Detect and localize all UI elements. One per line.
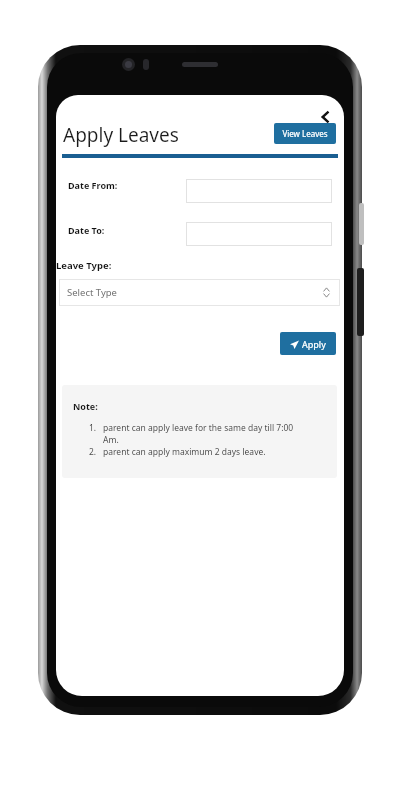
button[interactable]: Select Type: [59, 279, 340, 306]
staticText: Apply Leaves: [63, 122, 179, 148]
staticText: parent can apply maximum 2 days leave.: [103, 446, 266, 458]
staticText: Apply: [302, 338, 326, 350]
staticText: 2.: [89, 446, 97, 458]
staticText: 1.: [89, 422, 97, 434]
button[interactable]: Date To input: [186, 222, 332, 246]
button[interactable]: Date From input: [186, 179, 332, 203]
staticText: parent can apply leave for the same day …: [103, 422, 328, 446]
staticText: View Leaves: [282, 128, 328, 139]
staticText: Select Type: [67, 286, 117, 299]
staticText: Leave Type:: [56, 259, 112, 272]
staticText: Date From:: [68, 179, 118, 191]
button[interactable]: Apply: [280, 332, 336, 355]
staticText: Note:: [73, 400, 98, 412]
staticText: Date To:: [68, 224, 105, 236]
button[interactable]: Back: [312, 103, 340, 131]
button[interactable]: View Leaves: [274, 123, 336, 144]
